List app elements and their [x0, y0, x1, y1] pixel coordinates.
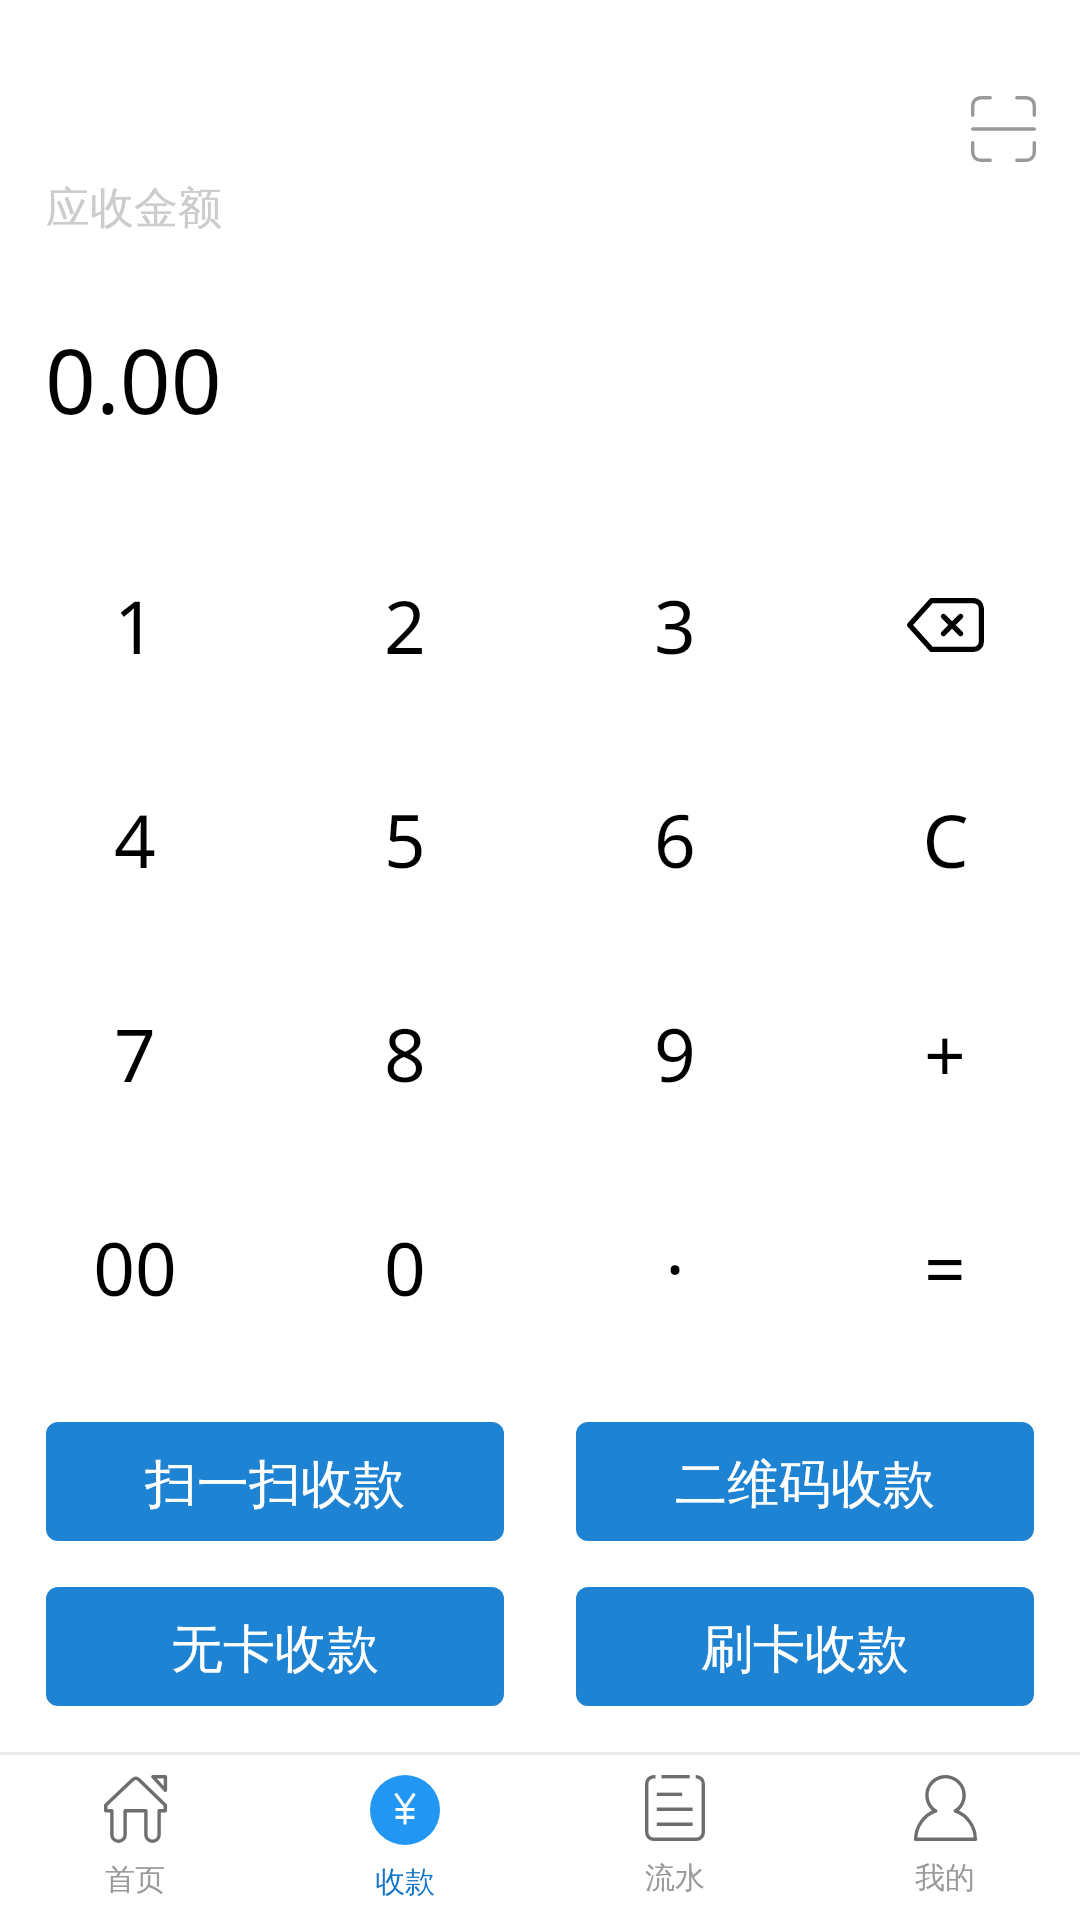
button[interactable]: 刷卡收款 [576, 1587, 1034, 1706]
staticText: + [924, 1004, 966, 1103]
staticText: · [665, 1218, 685, 1317]
staticText: 5 [384, 790, 426, 889]
button[interactable]: 9 [557, 957, 793, 1149]
staticText: 8 [384, 1004, 426, 1103]
staticText: 2 [384, 576, 426, 675]
button[interactable]: 3 [557, 529, 793, 721]
staticText: 首页 [105, 1861, 165, 1899]
button[interactable]: 6 [557, 743, 793, 935]
staticText: 3 [654, 576, 696, 675]
staticText: 00 [93, 1218, 177, 1317]
staticText: = [924, 1218, 966, 1317]
staticText: 7 [114, 1004, 156, 1103]
button[interactable]: 0 [287, 1171, 523, 1363]
staticText: 刷卡收款 [701, 1617, 909, 1683]
staticText: 二维码收款 [675, 1452, 935, 1518]
button[interactable]: + [827, 957, 1063, 1149]
button[interactable]: 流水 [540, 1755, 810, 1920]
button[interactable]: Scan QR code [943, 69, 1063, 189]
staticText: 4 [114, 790, 156, 889]
button[interactable]: · [557, 1171, 793, 1363]
staticText: 无卡收款 [171, 1617, 379, 1683]
button[interactable]: 我的 [810, 1755, 1080, 1920]
staticText: 1 [114, 576, 156, 675]
button[interactable]: 无卡收款 [46, 1587, 504, 1706]
button[interactable]: 首页 [0, 1755, 270, 1920]
staticText: 流水 [645, 1859, 705, 1897]
button[interactable]: 00 [17, 1171, 253, 1363]
staticText: 0.00 [45, 319, 222, 440]
button[interactable]: 1 [17, 529, 253, 721]
staticText: 应收金额 [46, 181, 222, 236]
button[interactable]: 7 [17, 957, 253, 1149]
button[interactable]: 收款 [270, 1755, 540, 1920]
staticText: 0 [384, 1218, 426, 1317]
staticText: 6 [654, 790, 696, 889]
button[interactable]: 2 [287, 529, 523, 721]
button[interactable]: = [827, 1171, 1063, 1363]
button[interactable]: 8 [287, 957, 523, 1149]
staticText: 9 [654, 1004, 696, 1103]
staticText: 收款 [375, 1863, 435, 1901]
staticText: C [922, 790, 969, 889]
button[interactable]: 5 [287, 743, 523, 935]
button[interactable]: 扫一扫收款 [46, 1422, 504, 1541]
button[interactable]: 4 [17, 743, 253, 935]
button[interactable]: 二维码收款 [576, 1422, 1034, 1541]
staticText: 扫一扫收款 [145, 1452, 405, 1518]
button[interactable]: C [827, 743, 1063, 935]
staticText: 我的 [915, 1859, 975, 1897]
button[interactable]: Backspace [827, 529, 1063, 721]
